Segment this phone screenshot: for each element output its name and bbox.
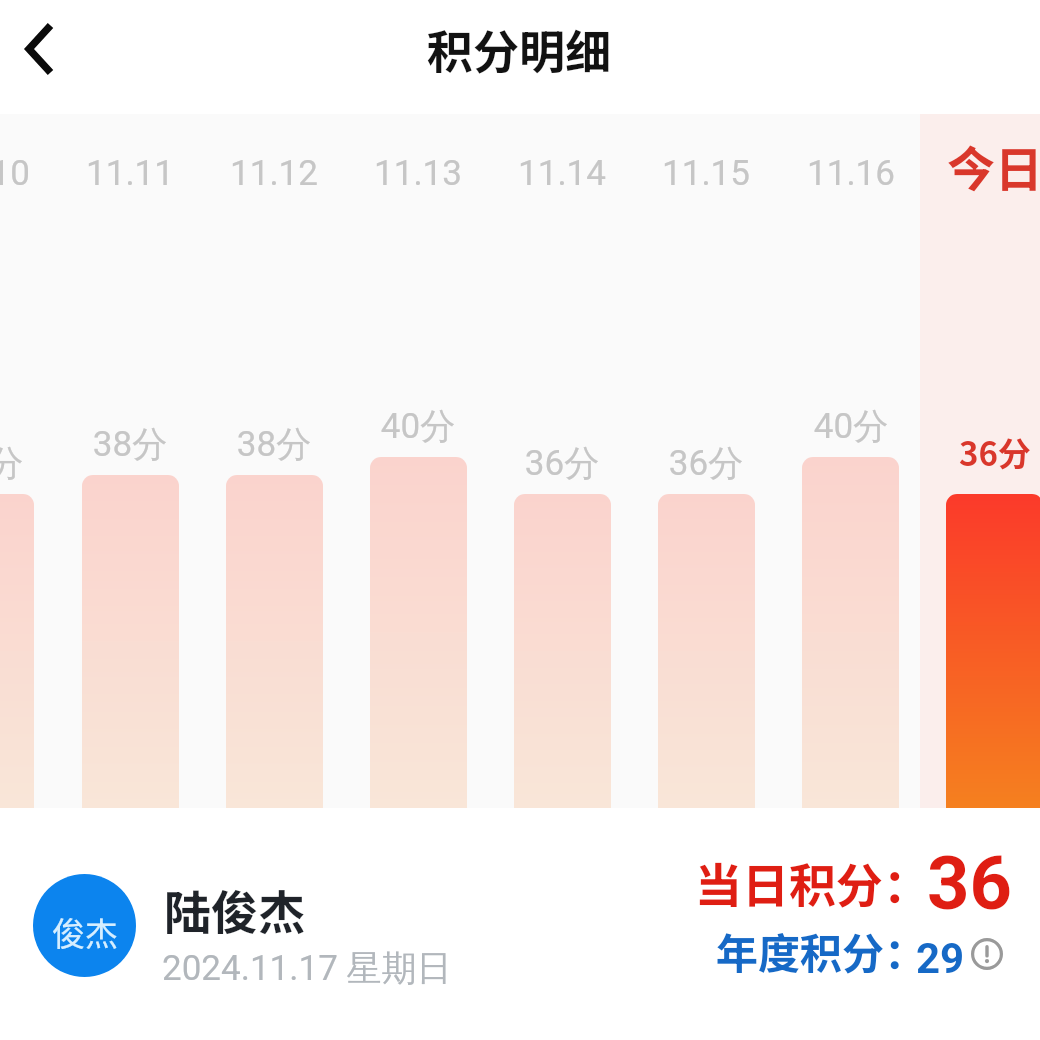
button[interactable]: Info xyxy=(969,936,1005,972)
button[interactable]: 11.14 36分 xyxy=(490,114,634,808)
button[interactable]: 11.13 40分 xyxy=(346,114,490,808)
button[interactable]: 俊杰 xyxy=(33,874,136,977)
staticText: 2024.11.17 星期日 xyxy=(162,946,452,990)
staticText: 36分 xyxy=(462,441,662,485)
button[interactable]: 11.15 36分 xyxy=(634,114,778,808)
button[interactable]: 今日 36分 xyxy=(923,114,1040,808)
staticText: 38分 xyxy=(174,422,374,466)
button[interactable]: 11.10 36分 xyxy=(0,114,58,808)
staticText: 11.13 xyxy=(318,153,518,194)
button[interactable]: 11.12 38分 xyxy=(202,114,346,808)
staticText: 11.11 xyxy=(30,153,230,194)
staticText: 俊杰 xyxy=(52,908,118,956)
staticText: 陆俊杰 xyxy=(164,875,305,943)
staticText: 积分明细 xyxy=(427,16,611,83)
staticText: 11.10 xyxy=(0,153,86,194)
staticText: 36分 xyxy=(606,441,806,485)
staticText: 11.14 xyxy=(462,153,662,194)
staticText: 11.12 xyxy=(174,153,374,194)
staticText: 当日积分： xyxy=(695,848,930,916)
staticText: 40分 xyxy=(318,404,518,448)
button[interactable]: 11.11 38分 xyxy=(58,114,202,808)
staticText: 36分 xyxy=(0,441,86,485)
button[interactable]: Back xyxy=(8,12,84,102)
staticText: 36 xyxy=(927,840,1012,927)
staticText: 年度积分： xyxy=(716,920,927,981)
staticText: 11.15 xyxy=(606,153,806,194)
button[interactable]: 11.16 40分 xyxy=(778,114,922,808)
staticText: 11.16 xyxy=(751,153,951,194)
staticText: 38分 xyxy=(30,422,230,466)
staticText: 今日 xyxy=(895,131,1040,201)
staticText: 36分 xyxy=(895,428,1040,476)
staticText: 40分 xyxy=(751,404,951,448)
staticText: 29 xyxy=(916,934,965,983)
